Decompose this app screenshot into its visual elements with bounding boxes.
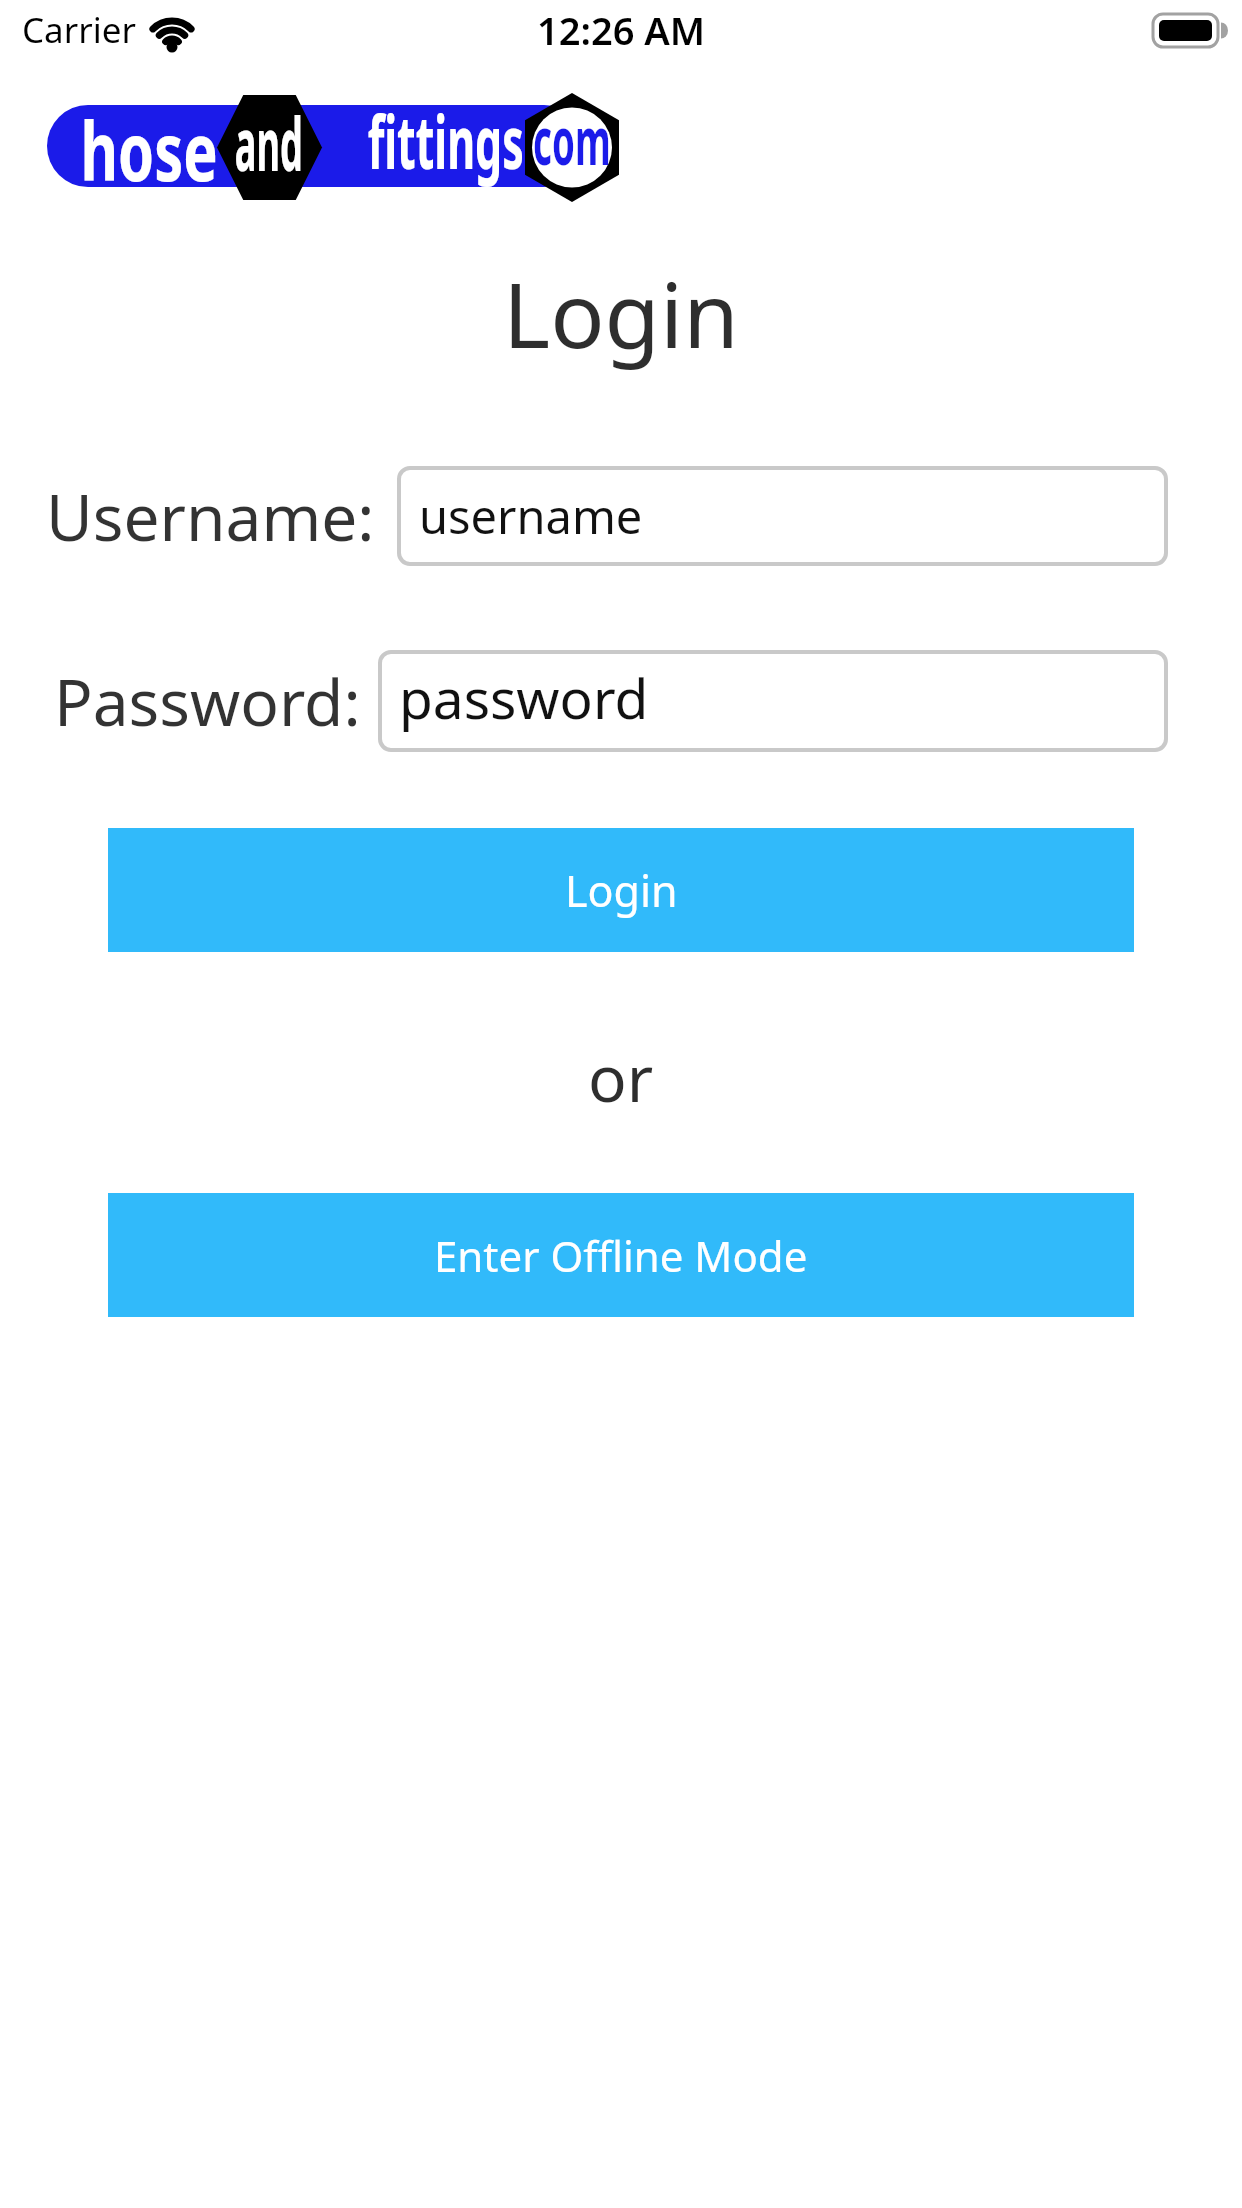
button[interactable]: Login xyxy=(108,828,1134,952)
staticText: fittings xyxy=(368,90,524,186)
staticText: Carrier xyxy=(22,6,136,52)
staticText: Login xyxy=(503,252,739,372)
staticText: Login xyxy=(565,861,678,920)
staticText: Enter Offline Mode xyxy=(434,1227,808,1284)
staticText: com xyxy=(533,94,611,184)
staticText: and xyxy=(235,93,303,192)
staticText: hose xyxy=(81,94,218,190)
staticText: Username: xyxy=(46,473,375,560)
staticText: password xyxy=(399,660,649,735)
staticText: username xyxy=(419,484,643,548)
staticText: or xyxy=(588,1034,654,1121)
button[interactable]: password xyxy=(378,650,1168,752)
button[interactable]: Enter Offline Mode xyxy=(108,1193,1134,1317)
staticText: Password: xyxy=(54,658,361,745)
button[interactable]: username xyxy=(397,466,1168,566)
staticText: 12:26 AM xyxy=(537,4,706,50)
